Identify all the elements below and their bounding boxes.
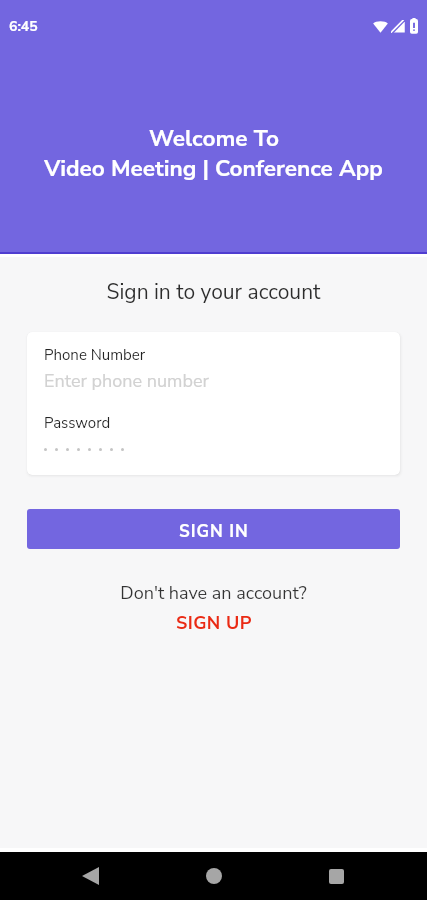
staticText: Enter phone number	[44, 369, 209, 394]
staticText: 6:45	[9, 17, 38, 36]
button[interactable]: SIGN UP	[172, 609, 256, 638]
staticText: SIGN IN	[179, 520, 249, 543]
button[interactable]: Recent apps	[317, 857, 355, 895]
button[interactable]: SIGN IN	[27, 509, 400, 549]
staticText: Password	[44, 413, 111, 433]
button[interactable]: Home	[195, 857, 233, 895]
staticText: SIGN UP	[176, 611, 252, 636]
staticText: Video Meeting | Conference App	[44, 153, 383, 184]
staticText: Phone Number	[44, 345, 146, 365]
staticText: Sign in to your account	[0, 278, 427, 307]
button[interactable]: Back	[71, 857, 109, 895]
staticText: Welcome To	[149, 123, 279, 154]
staticText: Don't have an account?	[0, 581, 427, 606]
